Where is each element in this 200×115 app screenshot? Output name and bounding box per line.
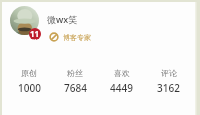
button[interactable]: 粉丝 [52,68,98,95]
staticText: 喜欢 [114,68,130,78]
button[interactable]: Avatar [10,6,39,35]
staticText: 11 [30,28,40,39]
button[interactable]: 博客专家 [49,32,91,42]
button[interactable]: Level 11 [29,28,41,40]
staticText: 微wx笑 [47,13,78,25]
staticText: 粉丝 [67,68,83,78]
staticText: 原创 [21,68,37,78]
staticText: 3162 [157,81,180,95]
staticText: 博客专家 [63,33,91,42]
button[interactable]: 微wx笑 [47,13,78,25]
button[interactable]: 喜欢 [98,68,145,95]
button[interactable]: 评论 [145,68,192,95]
button[interactable]: 原创 [6,68,52,95]
staticText: 4449 [110,81,133,95]
staticText: YEAR [31,39,39,40]
staticText: 7684 [64,81,87,95]
staticText: 评论 [161,68,177,78]
staticText: 1000 [18,81,41,95]
